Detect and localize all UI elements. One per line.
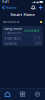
staticText: Living Room xyxy=(4,27,22,30)
button[interactable]: Home xyxy=(0,88,15,100)
button[interactable]: Temperature xyxy=(2,36,43,41)
staticText: Home xyxy=(5,5,16,10)
button[interactable]: Rooms xyxy=(15,88,30,100)
button[interactable]: Humidity xyxy=(2,41,43,46)
staticText: 9:41 xyxy=(2,0,9,4)
button[interactable]: Add device xyxy=(37,5,45,10)
staticText: FAVOURITES xyxy=(3,20,19,24)
staticText: 3 accessories xyxy=(4,31,21,35)
staticText: Connected xyxy=(23,29,39,32)
staticText: 48% xyxy=(35,42,41,45)
staticText: Humidity xyxy=(4,42,16,45)
button[interactable]: Notifications xyxy=(30,5,37,10)
staticText: 21°C xyxy=(34,37,41,40)
button[interactable]: Settings xyxy=(30,88,45,100)
staticText: Smart Home xyxy=(10,12,34,17)
staticText: Temperature xyxy=(4,37,21,40)
button[interactable]: Home xyxy=(0,4,16,11)
button[interactable]: Living Room xyxy=(2,26,43,35)
